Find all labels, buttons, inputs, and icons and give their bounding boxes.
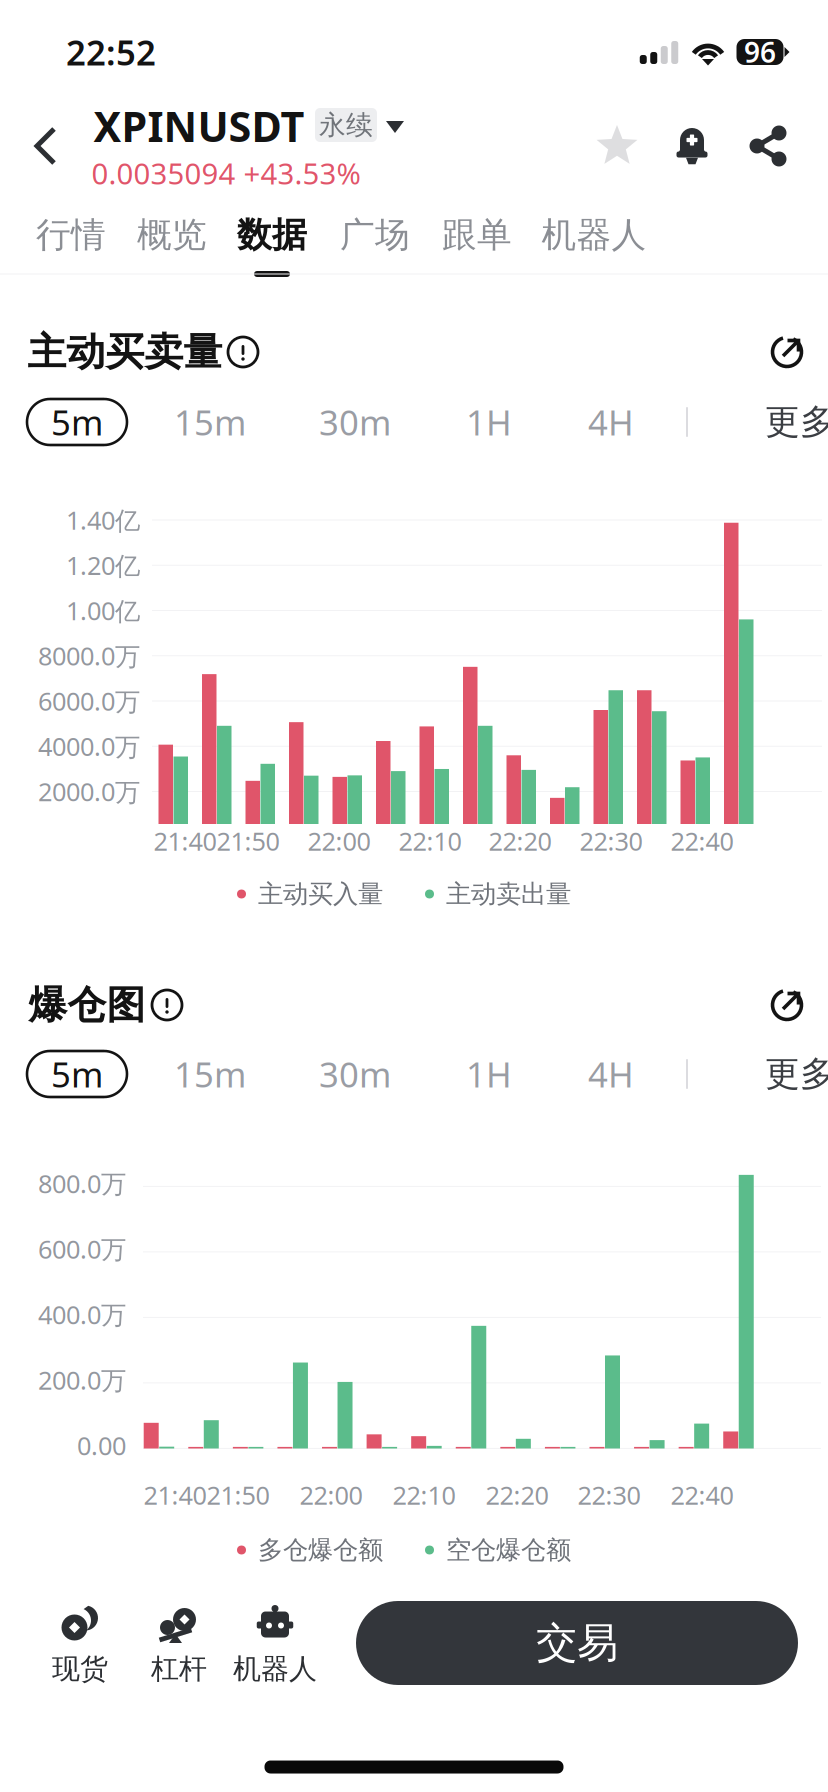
staticText: 2000.0万: [38, 775, 140, 808]
staticText: 主动买入量: [258, 878, 383, 909]
button[interactable]: 概览: [124, 210, 220, 280]
button[interactable]: Add to favorites: [587, 116, 647, 176]
staticText: 15m: [174, 399, 246, 445]
staticText: 5m: [51, 399, 103, 445]
staticText: 4H: [588, 1051, 634, 1097]
staticText: 22:40: [670, 1478, 733, 1512]
staticText: 机器人: [541, 214, 646, 256]
button[interactable]: 现货: [25, 1601, 135, 1685]
staticText: 主动卖出量: [446, 878, 571, 909]
staticText: 广场: [340, 214, 410, 256]
staticText: 概览: [137, 214, 207, 256]
staticText: 21:40: [143, 1478, 206, 1512]
staticText: 22:30: [579, 824, 642, 858]
staticText: 现货: [52, 1652, 108, 1686]
button[interactable]: 机器人: [220, 1601, 330, 1685]
staticText: 5m: [51, 1051, 103, 1097]
button[interactable]: 杠杆: [124, 1601, 234, 1685]
staticText: 96: [744, 33, 776, 71]
staticText: 空仓爆仓额: [446, 1534, 571, 1565]
staticText: 多仓爆仓额: [258, 1534, 383, 1565]
staticText: 21:40: [153, 824, 216, 858]
staticText: 4H: [588, 399, 634, 445]
staticText: 1.20亿: [66, 548, 140, 582]
staticText: 主动买卖量: [27, 328, 222, 376]
button[interactable]: 更多: [740, 1051, 828, 1097]
button[interactable]: 更多: [740, 399, 828, 445]
button[interactable]: Open full chart: [761, 979, 813, 1031]
staticText: 更多: [765, 1053, 828, 1095]
staticText: 22:10: [398, 824, 461, 858]
staticText: 21:50: [216, 824, 279, 858]
button[interactable]: 15m: [160, 1051, 260, 1097]
staticText: 永续: [319, 109, 373, 141]
button[interactable]: 15m: [160, 399, 260, 445]
staticText: 0.00: [77, 1429, 126, 1462]
staticText: 15m: [174, 1051, 246, 1097]
staticText: 30m: [319, 399, 391, 445]
staticText: 机器人: [233, 1652, 317, 1686]
staticText: 0.0035094 +43.53%: [91, 153, 360, 192]
staticText: 22:52: [66, 29, 156, 75]
staticText: 更多: [765, 401, 828, 443]
button[interactable]: 4H: [561, 399, 661, 445]
button[interactable]: Switch contract: [373, 105, 417, 149]
button[interactable]: 30m: [305, 399, 405, 445]
button[interactable]: 广场: [327, 210, 423, 280]
button[interactable]: Info: [145, 983, 189, 1027]
staticText: XPINUSDT: [93, 99, 304, 153]
staticText: 22:00: [299, 1478, 362, 1512]
staticText: 1H: [466, 399, 512, 445]
staticText: 22:30: [577, 1478, 640, 1512]
staticText: 6000.0万: [38, 684, 140, 718]
staticText: 1H: [466, 1051, 512, 1097]
button[interactable]: 1H: [439, 1051, 539, 1097]
button[interactable]: 跟单: [429, 210, 525, 280]
staticText: 22:20: [485, 1478, 548, 1512]
staticText: 杠杆: [151, 1652, 207, 1686]
button[interactable]: Price alert: [662, 116, 722, 176]
staticText: 30m: [319, 1051, 391, 1097]
button[interactable]: 交易: [356, 1601, 798, 1685]
staticText: 22:20: [488, 824, 551, 858]
staticText: 爆仓图: [28, 981, 145, 1029]
button[interactable]: 机器人: [531, 210, 657, 280]
staticText: 行情: [36, 214, 106, 256]
button[interactable]: Info: [221, 330, 265, 374]
staticText: 1.40亿: [66, 503, 140, 537]
staticText: 400.0万: [38, 1298, 126, 1331]
button[interactable]: 行情: [23, 210, 119, 280]
staticText: 4000.0万: [38, 729, 140, 763]
button[interactable]: Share: [738, 116, 798, 176]
staticText: 交易: [536, 1618, 618, 1668]
button[interactable]: 4H: [561, 1051, 661, 1097]
button[interactable]: Back: [14, 110, 80, 182]
button[interactable]: 30m: [305, 1051, 405, 1097]
staticText: 22:10: [392, 1478, 455, 1512]
button[interactable]: 数据: [224, 210, 320, 280]
button[interactable]: 1H: [439, 399, 539, 445]
staticText: 22:00: [307, 824, 370, 858]
staticText: 200.0万: [38, 1363, 126, 1397]
staticText: 21:50: [206, 1478, 269, 1512]
staticText: 1.00亿: [66, 594, 140, 627]
button[interactable]: 永续: [315, 108, 377, 142]
staticText: 8000.0万: [38, 639, 140, 672]
staticText: 22:40: [670, 824, 733, 858]
staticText: 数据: [237, 214, 307, 256]
staticText: 800.0万: [38, 1167, 126, 1200]
button[interactable]: 5m: [27, 399, 127, 445]
staticText: 600.0万: [38, 1232, 126, 1266]
button[interactable]: 5m: [27, 1051, 127, 1097]
button[interactable]: Open full chart: [761, 326, 813, 378]
staticText: 跟单: [442, 214, 512, 256]
